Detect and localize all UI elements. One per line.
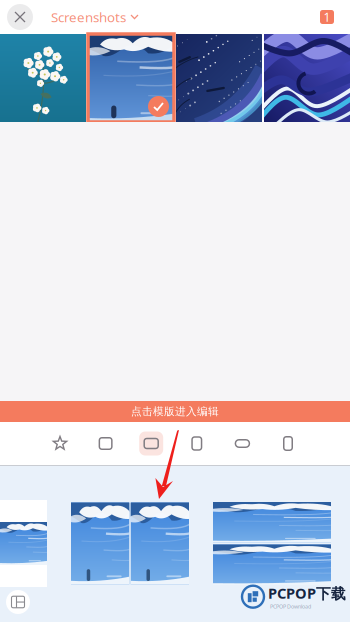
button[interactable]: Portrait layout — [174, 422, 220, 464]
button[interactable]: Photo 4 — [264, 34, 350, 122]
button[interactable]: Favourite — [37, 422, 83, 464]
button[interactable]: Photo 2, selected — [88, 34, 174, 122]
button[interactable]: Photo 3 — [176, 34, 262, 122]
button[interactable]: Photo 1 — [0, 34, 86, 122]
button[interactable]: Template 1 — [0, 500, 47, 587]
button[interactable]: 1 selected — [310, 0, 344, 34]
button[interactable]: Template 2 — [71, 502, 189, 584]
button[interactable]: Close — [0, 0, 40, 34]
button[interactable]: Landscape layout, selected — [128, 422, 174, 464]
button[interactable]: 点击模版进入编辑 — [0, 401, 350, 422]
staticText: 1 — [323, 9, 330, 25]
staticText: PCPOP Download — [270, 603, 311, 610]
staticText: 点击模版进入编辑 — [131, 405, 219, 418]
button[interactable]: Template 3 — [213, 502, 331, 585]
button[interactable]: Square layout — [83, 422, 128, 464]
button[interactable]: Screenshots — [40, 0, 144, 34]
staticText: PCPOP下载 — [268, 583, 346, 603]
staticText: Screenshots — [51, 8, 126, 26]
button[interactable]: Layout options — [1, 585, 35, 619]
button[interactable]: Wide layout — [220, 422, 265, 464]
button[interactable]: Tall layout — [265, 422, 311, 464]
